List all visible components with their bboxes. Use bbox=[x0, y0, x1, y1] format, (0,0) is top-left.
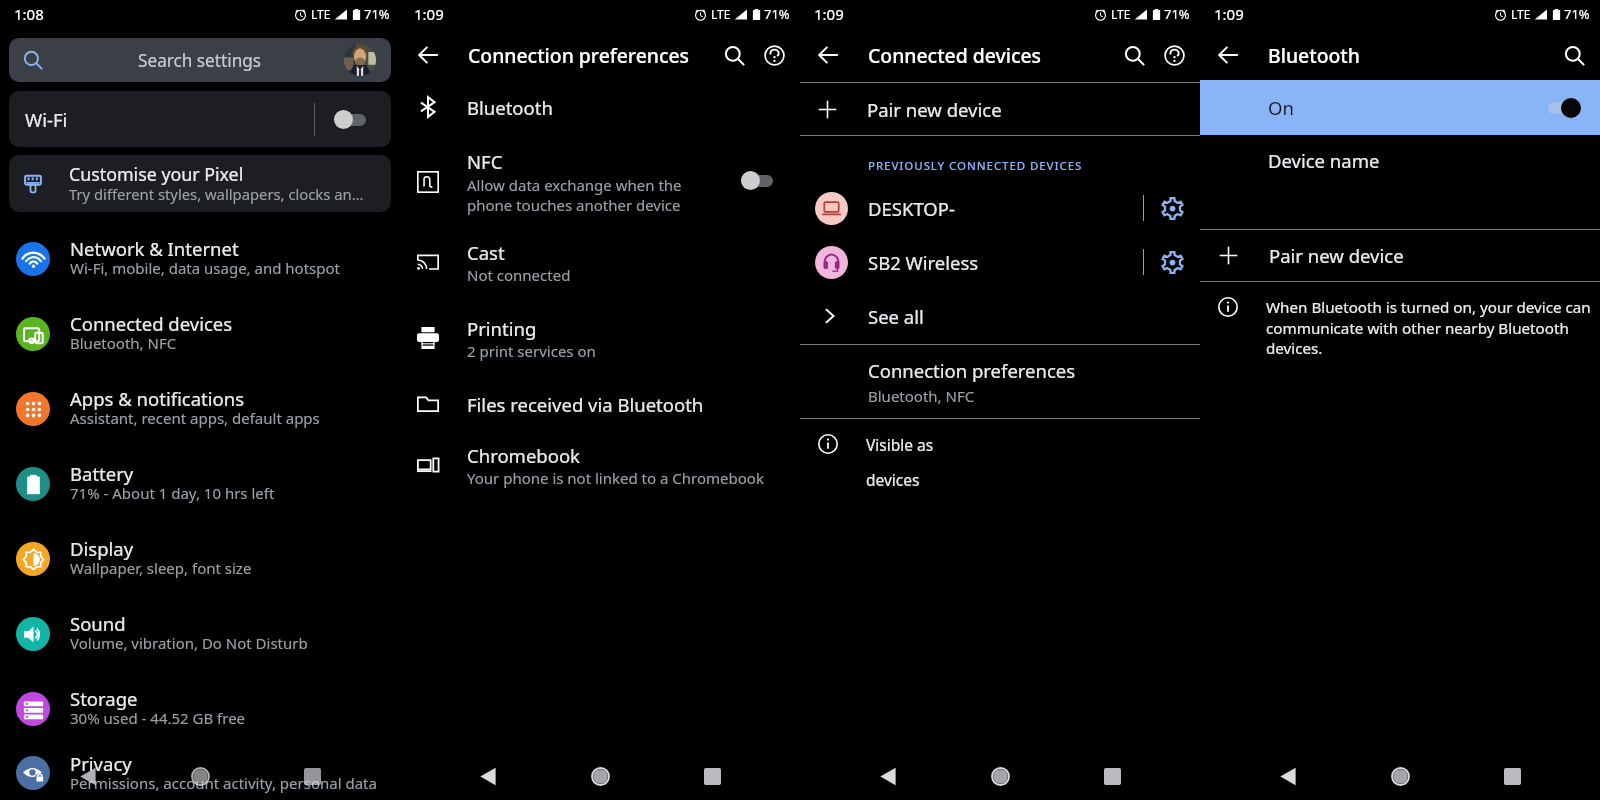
staticText: Apps & notifications bbox=[70, 386, 245, 411]
staticText: Not connected bbox=[467, 265, 571, 285]
staticText: Cast bbox=[467, 240, 505, 265]
button[interactable]: Help bbox=[754, 35, 794, 75]
button[interactable]: Home bbox=[979, 755, 1021, 797]
staticText: Chromebook bbox=[467, 443, 580, 468]
staticText: Storage bbox=[70, 686, 138, 711]
button[interactable]: Device settings bbox=[1158, 194, 1186, 222]
staticText: Connection preferences bbox=[468, 42, 714, 68]
button[interactable]: DESKTOP- bbox=[800, 181, 1200, 235]
staticText: Pair new device bbox=[867, 97, 1002, 122]
staticText: Permissions, account activity, personal … bbox=[70, 773, 377, 793]
button[interactable]: Customise your Pixel bbox=[9, 155, 391, 212]
button[interactable]: Home bbox=[179, 755, 221, 797]
staticText: On bbox=[1268, 95, 1548, 120]
staticText: Battery bbox=[70, 461, 134, 486]
staticText: Bluetooth, NFC bbox=[70, 333, 177, 353]
button[interactable]: Connected devices bbox=[0, 296, 400, 371]
staticText: Sound bbox=[70, 611, 126, 636]
button[interactable]: Back bbox=[67, 755, 109, 797]
staticText: LTE bbox=[311, 6, 331, 22]
button[interactable]: Apps & notifications bbox=[0, 371, 400, 446]
button[interactable]: Pair new device bbox=[800, 83, 1200, 135]
button[interactable]: Network & Internet bbox=[0, 221, 400, 296]
staticText: When Bluetooth is turned on, your device… bbox=[1266, 297, 1591, 358]
button[interactable]: Battery bbox=[0, 446, 400, 521]
button[interactable]: Back bbox=[1267, 755, 1309, 797]
staticText: Bluetooth bbox=[467, 95, 553, 120]
staticText: Search settings bbox=[138, 49, 262, 72]
button[interactable]: Recents bbox=[1091, 755, 1133, 797]
button[interactable]: Device settings bbox=[1158, 248, 1186, 276]
button[interactable]: Connection preferences bbox=[800, 345, 1200, 418]
staticText: 1:09 bbox=[414, 4, 444, 24]
button[interactable]: Search bbox=[1114, 35, 1154, 75]
staticText: DESKTOP- bbox=[868, 196, 1143, 221]
button[interactable]: Recents bbox=[1491, 755, 1533, 797]
staticText: LTE bbox=[1111, 6, 1131, 22]
button[interactable]: Help bbox=[1154, 35, 1194, 75]
button[interactable]: Back bbox=[867, 755, 909, 797]
button[interactable]: Display bbox=[0, 521, 400, 596]
staticText: Privacy bbox=[70, 751, 132, 776]
button[interactable]: On bbox=[1200, 80, 1600, 135]
staticText: 71% - About 1 day, 10 hrs left bbox=[70, 483, 275, 503]
staticText: Display bbox=[70, 536, 134, 561]
button[interactable]: Wi-Fi bbox=[9, 91, 391, 147]
button[interactable]: See all bbox=[800, 289, 1200, 343]
button[interactable]: Bluetooth bbox=[400, 90, 800, 124]
staticText: 71% bbox=[1164, 5, 1190, 23]
button[interactable]: Pair new device bbox=[1200, 230, 1600, 281]
staticText: See all bbox=[868, 304, 924, 329]
button[interactable]: Search bbox=[1554, 35, 1594, 75]
staticText: LTE bbox=[1511, 6, 1531, 22]
button[interactable]: Recents bbox=[691, 755, 733, 797]
staticText: Network & Internet bbox=[70, 236, 239, 261]
staticText: Bluetooth bbox=[1268, 42, 1554, 68]
button[interactable]: Device name bbox=[1200, 135, 1600, 211]
button[interactable]: Search bbox=[714, 35, 754, 75]
button[interactable]: Cast bbox=[400, 242, 800, 282]
button[interactable]: Back bbox=[408, 35, 448, 75]
button[interactable]: Printing bbox=[400, 318, 800, 358]
button[interactable]: Search settings bbox=[9, 38, 391, 82]
button[interactable]: Home bbox=[579, 755, 621, 797]
button[interactable]: Home bbox=[1379, 755, 1421, 797]
staticText: Connection preferences bbox=[868, 358, 1076, 383]
staticText: Wallpaper, sleep, font size bbox=[70, 558, 252, 578]
staticText: LTE bbox=[711, 6, 731, 22]
staticText: Volume, vibration, Do Not Disturb bbox=[70, 633, 308, 653]
staticText: devices bbox=[866, 469, 920, 490]
button[interactable]: Back bbox=[808, 35, 848, 75]
staticText: 30% used - 44.52 GB free bbox=[70, 708, 246, 728]
button[interactable]: SB2 Wireless bbox=[800, 235, 1200, 289]
button[interactable]: Privacy bbox=[0, 746, 400, 800]
staticText: Wi-Fi bbox=[25, 107, 68, 132]
staticText: Device name bbox=[1268, 148, 1380, 173]
staticText: Assistant, recent apps, default apps bbox=[70, 408, 320, 428]
button[interactable]: NFC bbox=[400, 130, 800, 234]
staticText: 1:08 bbox=[14, 4, 44, 24]
button[interactable]: Files received via Bluetooth bbox=[400, 387, 800, 421]
staticText: Visible as bbox=[866, 434, 934, 455]
staticText: Allow data exchange when the phone touch… bbox=[467, 175, 682, 215]
button[interactable]: Recents bbox=[291, 755, 333, 797]
button[interactable]: Storage bbox=[0, 671, 400, 746]
staticText: 71% bbox=[1564, 5, 1590, 23]
button[interactable]: Back bbox=[1208, 35, 1248, 75]
staticText: 71% bbox=[364, 5, 390, 23]
staticText: SB2 Wireless bbox=[868, 250, 1143, 275]
button[interactable]: Account bbox=[344, 44, 376, 76]
staticText: Connected devices bbox=[70, 311, 233, 336]
staticText: 2 print services on bbox=[467, 341, 596, 361]
button[interactable]: Back bbox=[467, 755, 509, 797]
staticText: Try different styles, wallpapers, clocks… bbox=[69, 184, 364, 204]
staticText: Printing bbox=[467, 316, 537, 341]
staticText: Customise your Pixel bbox=[69, 162, 244, 186]
button[interactable]: Sound bbox=[0, 596, 400, 671]
staticText: Wi-Fi, mobile, data usage, and hotspot bbox=[70, 258, 340, 278]
staticText: Files received via Bluetooth bbox=[467, 392, 704, 417]
staticText: 71% bbox=[764, 5, 790, 23]
button[interactable]: Chromebook bbox=[400, 445, 800, 485]
staticText: Bluetooth, NFC bbox=[868, 386, 975, 406]
staticText: Pair new device bbox=[1269, 243, 1404, 268]
